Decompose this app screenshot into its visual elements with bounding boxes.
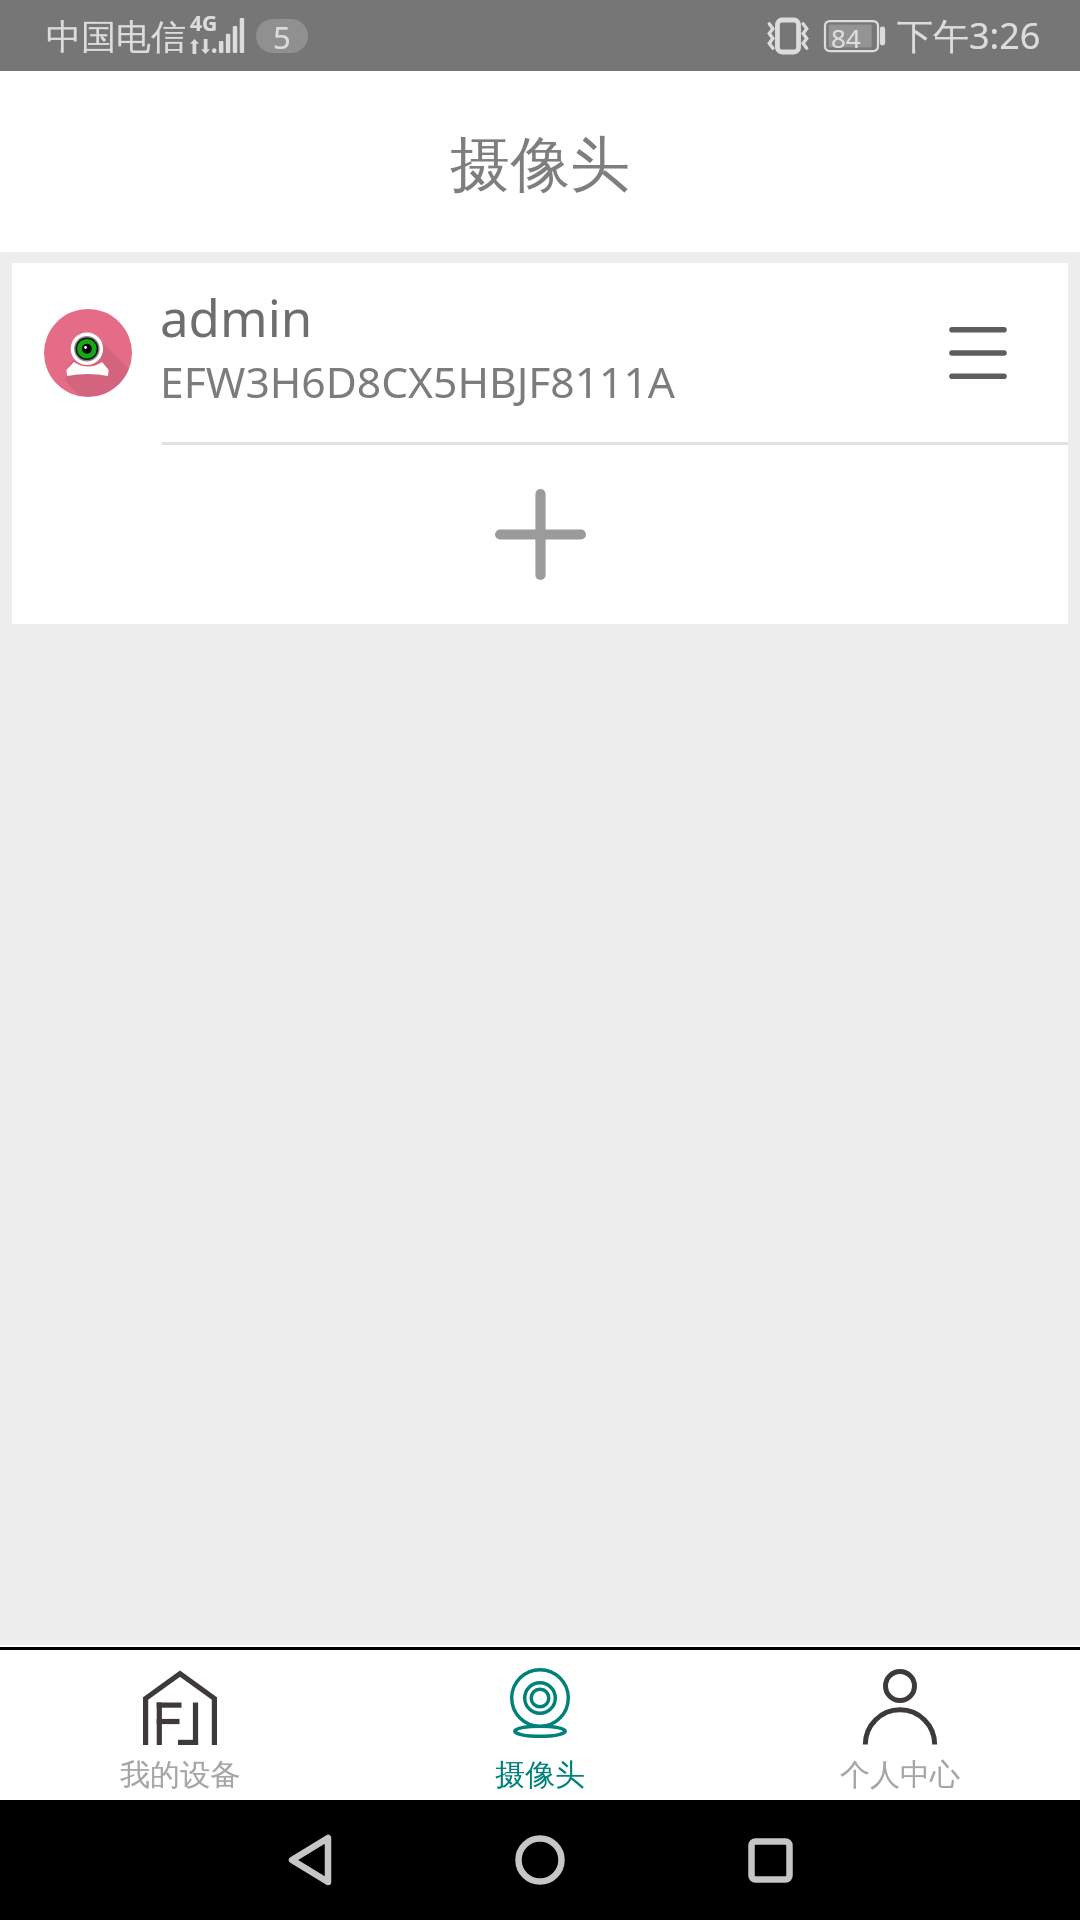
staticText: 我的设备 — [120, 1756, 240, 1794]
button[interactable]: 摄像头 — [360, 1650, 720, 1800]
button[interactable]: Back — [260, 1800, 360, 1920]
staticText: 摄像头 — [495, 1756, 585, 1794]
staticText: EFW3H6D8CX5HBJF8111A — [160, 352, 676, 410]
staticText: 中国电信 — [46, 15, 186, 59]
staticText: 摄像头 — [450, 127, 630, 203]
button[interactable]: Recents — [720, 1800, 820, 1920]
button[interactable]: admin — [12, 263, 1068, 442]
staticText: 下午3:26 — [897, 11, 1041, 60]
button[interactable]: Home — [490, 1800, 590, 1920]
staticText: 5 — [273, 19, 291, 50]
button[interactable]: Add camera — [12, 445, 1068, 624]
button[interactable]: Menu — [888, 263, 1068, 442]
button[interactable]: 个人中心 — [720, 1650, 1080, 1800]
staticText: admin — [160, 282, 313, 351]
staticText: 个人中心 — [840, 1756, 960, 1794]
staticText: 4G — [190, 9, 218, 38]
button[interactable]: 我的设备 — [0, 1650, 360, 1800]
staticText: 84 — [831, 20, 861, 50]
